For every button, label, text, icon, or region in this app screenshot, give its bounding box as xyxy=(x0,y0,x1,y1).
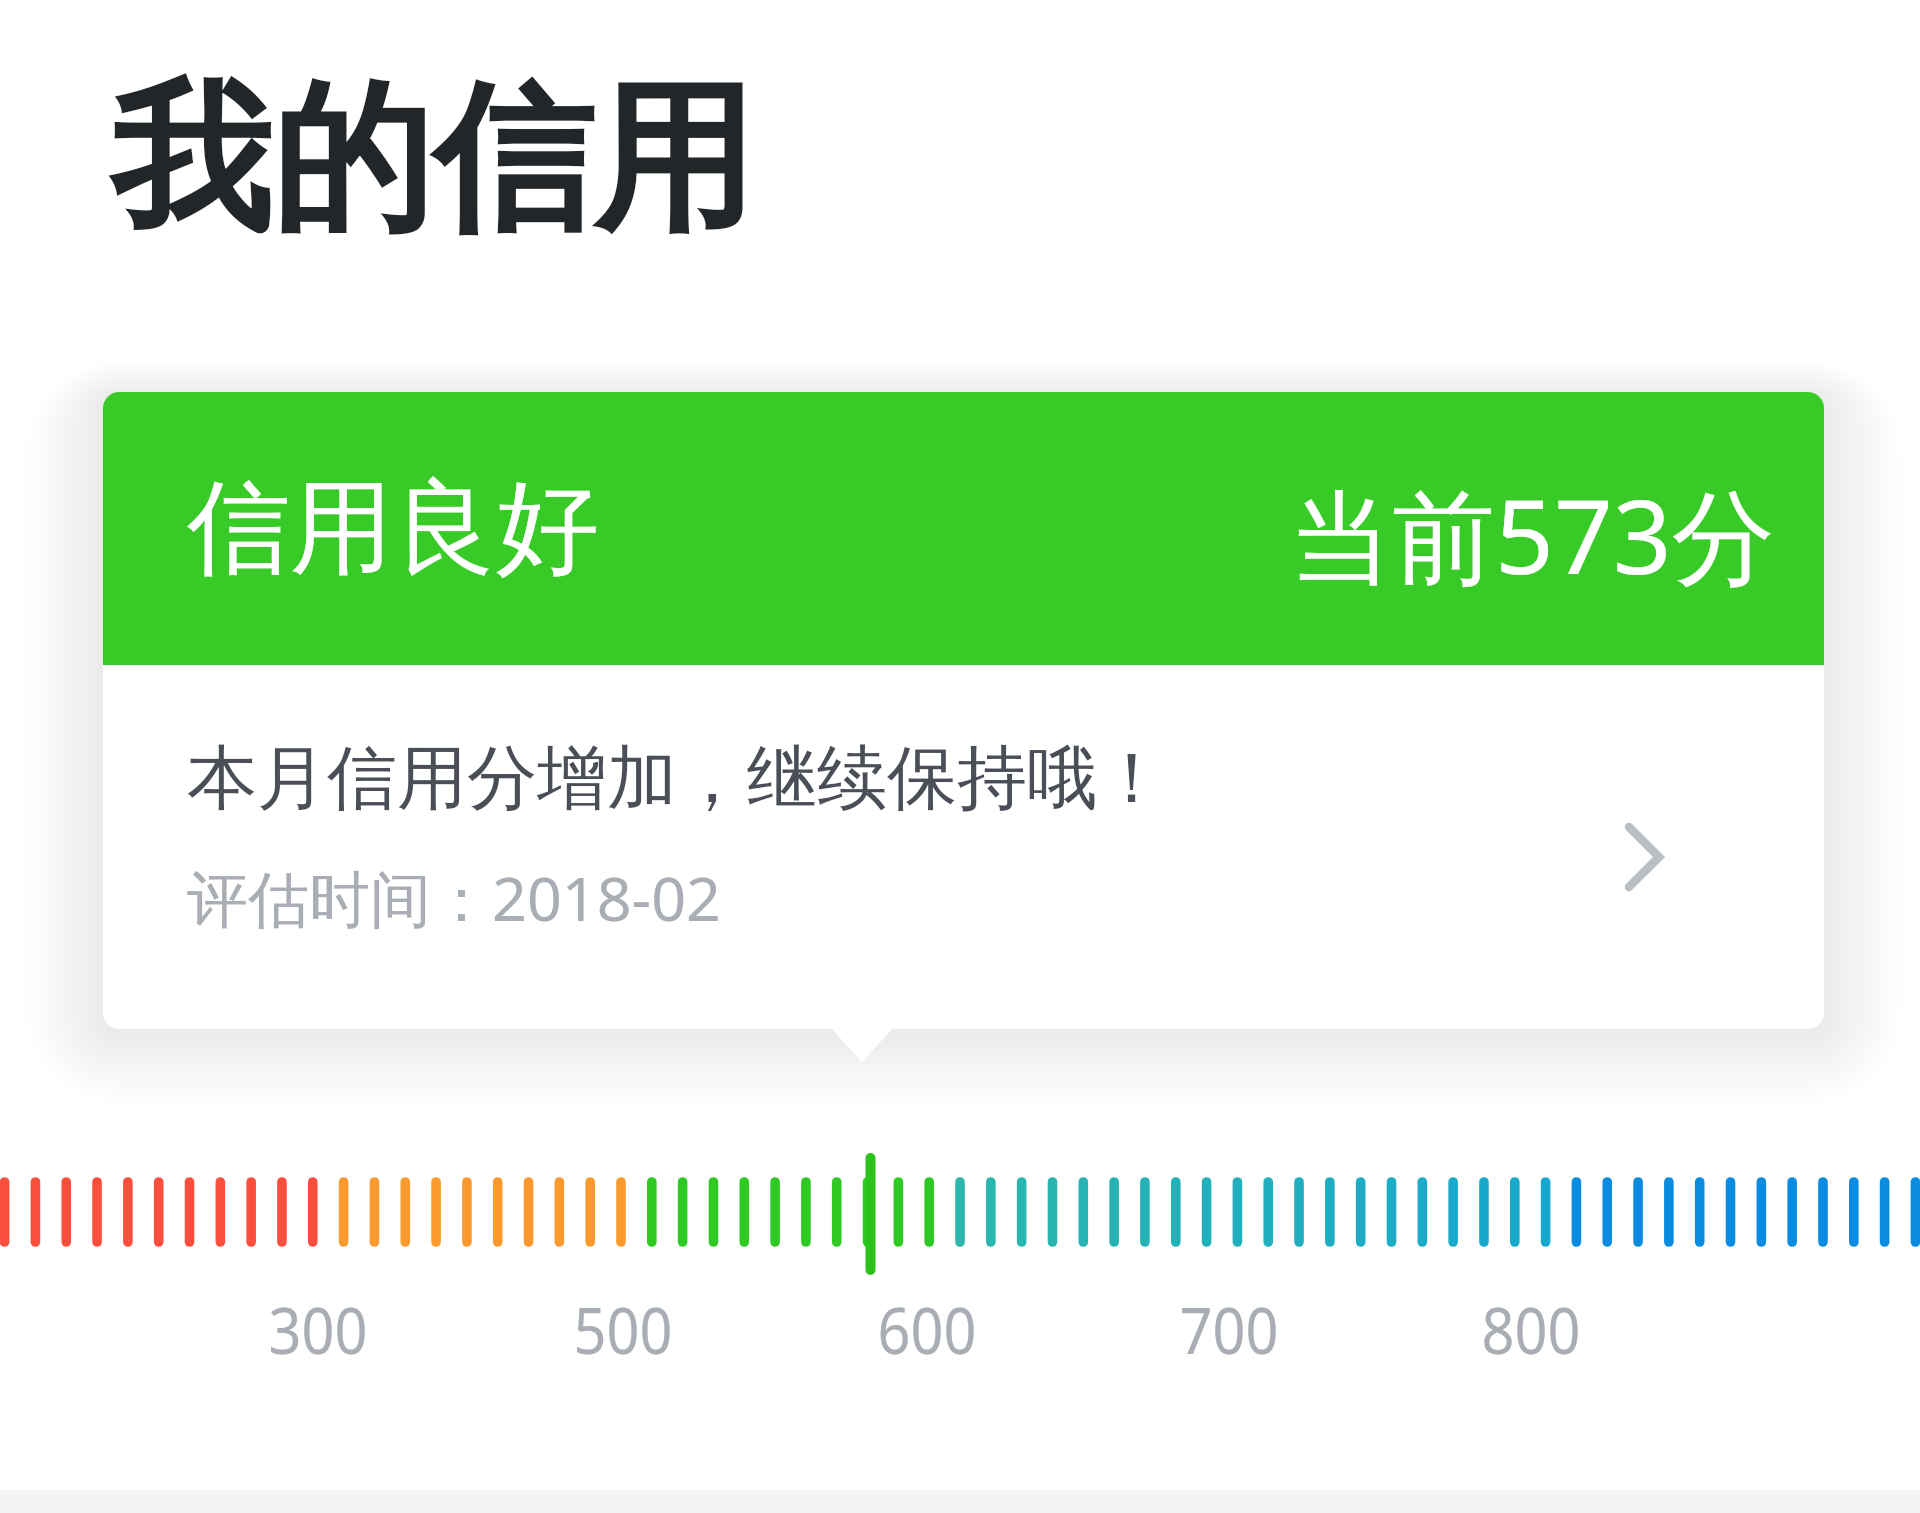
staticText: 评估时间：2018-02 xyxy=(187,856,721,939)
button[interactable]: 信用良好 xyxy=(103,392,1824,1029)
staticText: 300 xyxy=(228,1286,408,1373)
staticText: 信用良好 xyxy=(187,464,599,594)
staticText: 500 xyxy=(533,1286,713,1373)
staticText: 我的信用 xyxy=(110,59,754,262)
staticText: 700 xyxy=(1139,1286,1319,1373)
staticText: 600 xyxy=(837,1286,1017,1373)
staticText: 800 xyxy=(1441,1286,1621,1373)
staticText: 当前573分 xyxy=(1289,464,1775,605)
staticText: 本月信用分增加，继续保持哦！ xyxy=(187,735,1167,823)
other: 查看信用详情 xyxy=(1625,823,1669,895)
